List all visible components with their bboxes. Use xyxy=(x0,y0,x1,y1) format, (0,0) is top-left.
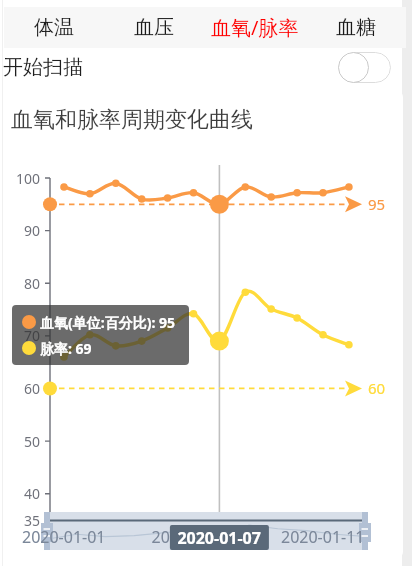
staticText: 血氧/脉率 xyxy=(211,14,299,41)
staticText: 血糖 xyxy=(336,15,376,40)
staticText: 血压 xyxy=(134,15,174,40)
button[interactable]: 血压 xyxy=(104,7,204,48)
button[interactable]: 血糖 xyxy=(305,7,406,48)
staticText: 血氧和脉率周期变化曲线 xyxy=(11,106,253,134)
button[interactable]: 体温 xyxy=(4,7,104,48)
button[interactable]: 血氧/脉率 xyxy=(204,7,305,48)
button[interactable]: 开始扫描开关 xyxy=(338,52,391,83)
staticText: 体温 xyxy=(34,15,74,40)
staticText: 开始扫描 xyxy=(3,55,83,80)
